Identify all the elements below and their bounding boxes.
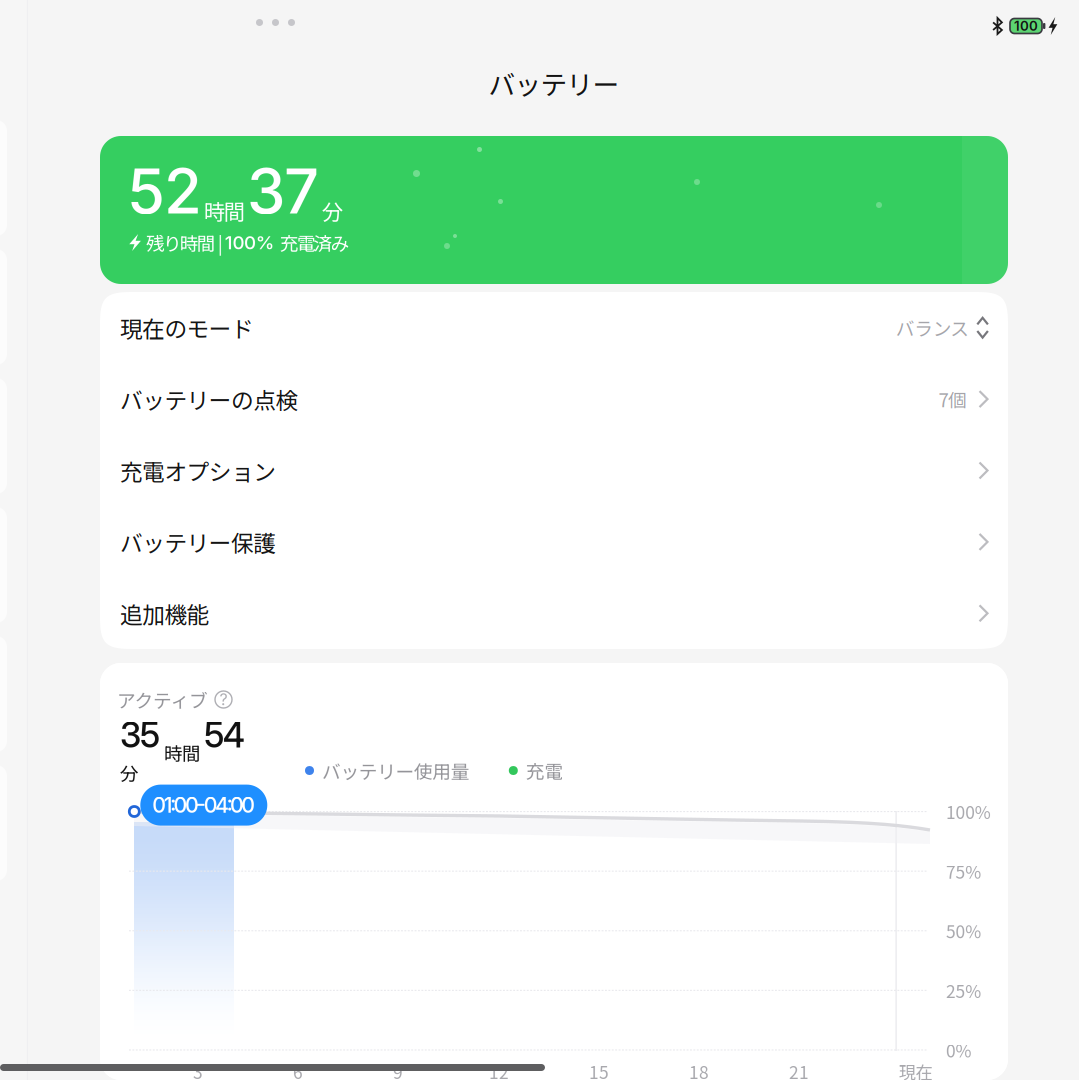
staticText: 追加機能 bbox=[120, 597, 210, 630]
staticText: 0% bbox=[946, 1037, 972, 1062]
staticText: 3 bbox=[193, 1059, 203, 1080]
staticText: 35 bbox=[120, 714, 160, 756]
button[interactable]: 充電オプション bbox=[100, 435, 1008, 506]
staticText: 37 bbox=[247, 154, 319, 228]
staticText: 9 bbox=[393, 1059, 403, 1080]
staticText: 充電済み bbox=[280, 229, 349, 256]
staticText: アクティブ bbox=[117, 686, 208, 713]
staticText: バッテリー保護 bbox=[120, 525, 276, 558]
staticText: バランス bbox=[896, 314, 969, 341]
button[interactable]: 現在のモード bbox=[100, 292, 1008, 363]
staticText: バッテリー使用量 bbox=[322, 757, 470, 784]
staticText: 54 bbox=[204, 714, 245, 756]
button[interactable]: バッテリーの点検 bbox=[100, 363, 1008, 435]
staticText: 分 bbox=[322, 195, 343, 226]
staticText: 残り時間 bbox=[146, 229, 216, 256]
staticText: 18 bbox=[689, 1059, 709, 1080]
button[interactable]: バッテリー保護 bbox=[100, 506, 1008, 578]
staticText: バッテリーの点検 bbox=[120, 383, 298, 415]
staticText: 52 bbox=[127, 154, 202, 228]
staticText: 時間 bbox=[204, 195, 244, 226]
staticText: ? bbox=[219, 690, 227, 709]
staticText: 15 bbox=[589, 1059, 609, 1080]
staticText: 21 bbox=[789, 1059, 809, 1080]
staticText: 100 bbox=[1014, 18, 1038, 34]
staticText: 充電 bbox=[526, 757, 563, 784]
staticText: 6 bbox=[293, 1059, 303, 1080]
staticText: 100% bbox=[225, 231, 275, 254]
staticText: 01:00-04:00 bbox=[152, 792, 255, 818]
staticText: 50% bbox=[946, 918, 981, 943]
staticText: 25% bbox=[946, 978, 981, 1003]
staticText: 現在のモード bbox=[120, 311, 254, 344]
staticText: 7個 bbox=[938, 386, 967, 413]
staticText: 時間 bbox=[164, 739, 201, 766]
staticText: 現在 bbox=[899, 1059, 932, 1080]
button[interactable]: 追加機能 bbox=[100, 578, 1008, 649]
staticText: | bbox=[218, 229, 223, 256]
staticText: 12 bbox=[489, 1059, 509, 1080]
staticText: バッテリー bbox=[488, 64, 619, 102]
staticText: 75% bbox=[946, 859, 981, 884]
staticText: 100% bbox=[946, 799, 991, 824]
staticText: 分 bbox=[120, 759, 139, 786]
staticText: 充電オプション bbox=[120, 454, 276, 487]
